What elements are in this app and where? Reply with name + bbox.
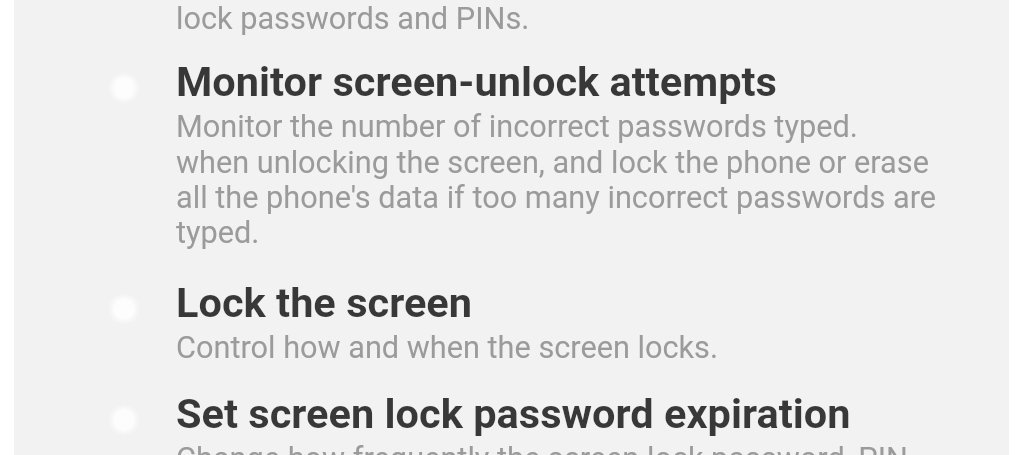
button[interactable]: Set screen lock password expiration <box>176 389 979 455</box>
button[interactable]: Lock the screen <box>176 278 979 366</box>
staticText: Control how and when the screen locks. <box>176 330 719 366</box>
staticText: Monitor screen-unlock attempts <box>176 57 777 106</box>
staticText: Set screen lock password expiration <box>176 389 851 438</box>
staticText: Lock the screen <box>176 278 473 327</box>
button[interactable]: Monitor screen-unlock attempts <box>176 57 979 251</box>
staticText: Monitor the number of incorrect password… <box>176 109 937 251</box>
staticText: lock passwords and PINs. <box>176 1 530 37</box>
staticText: Change how frequently the screen lock pa… <box>176 441 908 455</box>
